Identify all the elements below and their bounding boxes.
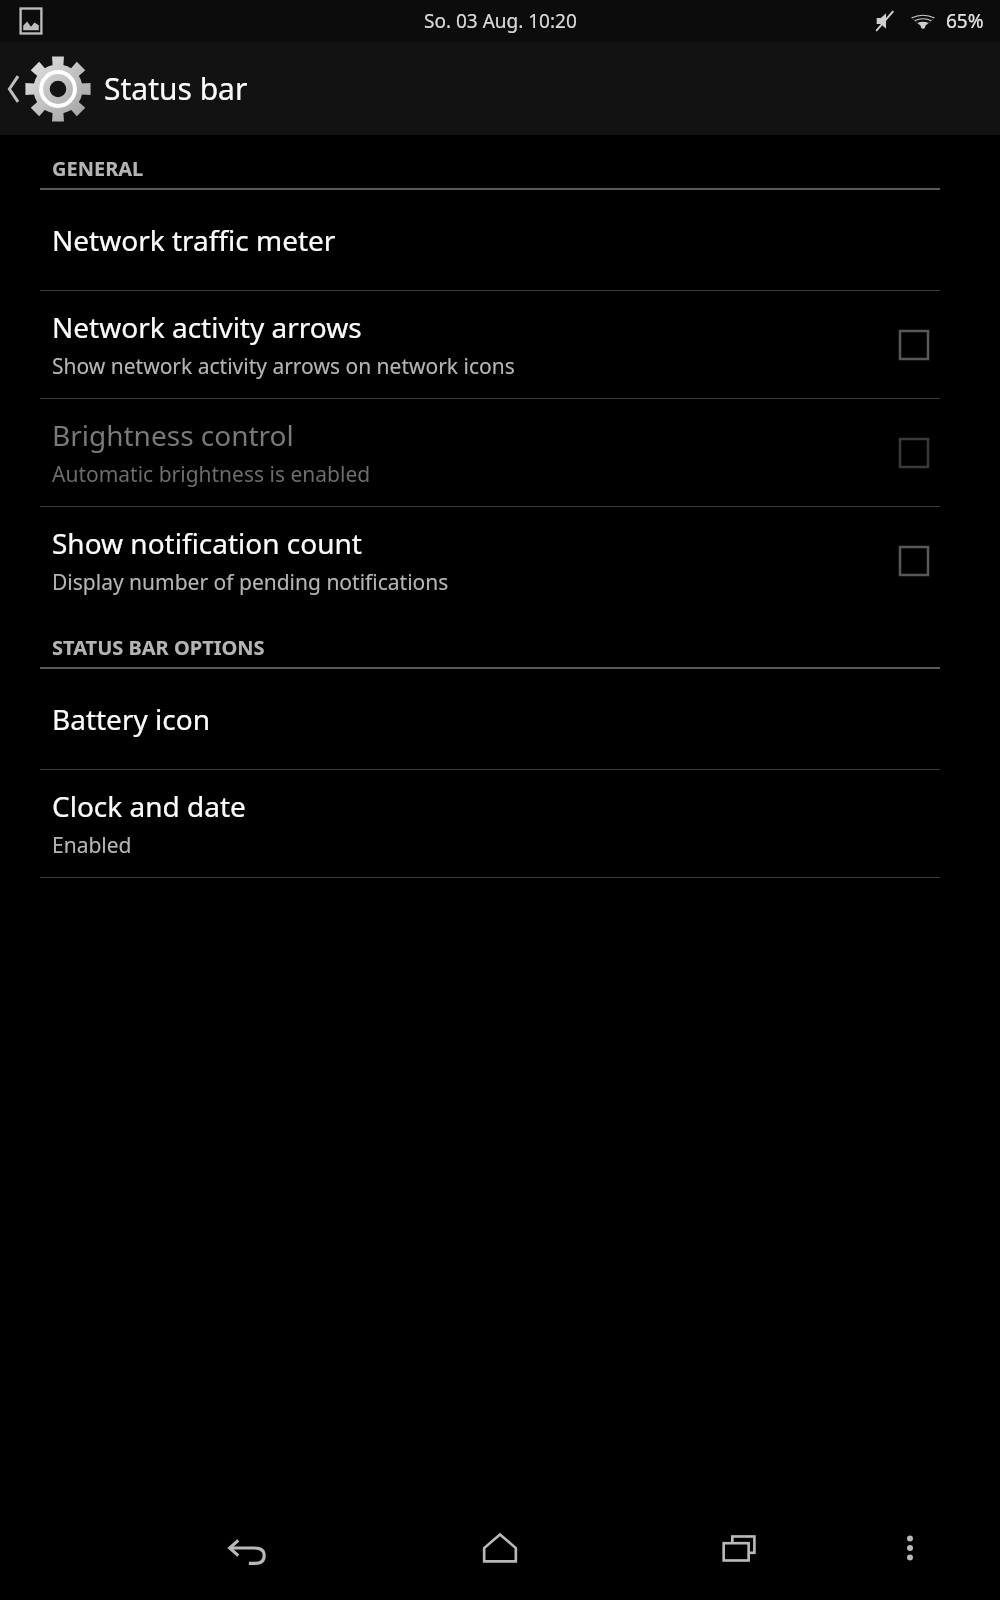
button[interactable]: Show notification count xyxy=(0,507,1000,614)
button[interactable]: Home xyxy=(450,1498,550,1598)
staticText: Clock and date xyxy=(52,787,246,825)
staticText: Brightness control xyxy=(52,416,294,454)
staticText: So. 03 Aug. 10:20 xyxy=(424,8,577,34)
staticText: Show network activity arrows on network … xyxy=(52,352,515,381)
staticText: Enabled xyxy=(52,831,132,860)
staticText: Display number of pending notifications xyxy=(52,568,449,597)
staticText: 65% xyxy=(946,8,984,34)
button[interactable]: Recent apps xyxy=(690,1498,790,1598)
button[interactable]: Battery icon xyxy=(0,669,1000,769)
button[interactable]: Back xyxy=(195,1498,295,1598)
staticText: Network traffic meter xyxy=(52,221,336,259)
button[interactable]: Clock and date xyxy=(0,770,1000,877)
staticText: GENERAL xyxy=(52,155,144,182)
button[interactable]: Network traffic meter xyxy=(0,190,1000,290)
staticText: STATUS BAR OPTIONS xyxy=(52,634,265,661)
staticText: Show notification count xyxy=(52,524,362,562)
staticText: Network activity arrows xyxy=(52,308,362,346)
button[interactable]: More options xyxy=(862,1500,958,1596)
staticText: Status bar xyxy=(104,68,248,109)
button[interactable]: Brightness control xyxy=(0,399,1000,506)
staticText: Battery icon xyxy=(52,700,210,738)
staticText: Automatic brightness is enabled xyxy=(52,460,371,489)
button[interactable]: Navigate up xyxy=(0,42,1000,135)
button[interactable]: Network activity arrows xyxy=(0,291,1000,398)
